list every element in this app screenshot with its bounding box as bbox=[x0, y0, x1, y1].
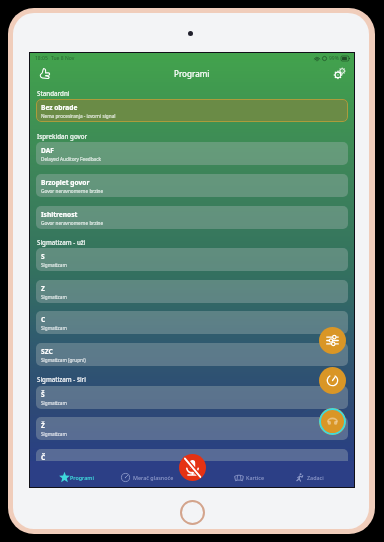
staticText: Brzoplet govor bbox=[41, 178, 90, 187]
staticText: Sigmatizam bbox=[41, 400, 67, 406]
button[interactable]: Č bbox=[36, 449, 348, 472]
staticText: C bbox=[41, 315, 46, 324]
staticText: DAF bbox=[41, 146, 54, 155]
button[interactable]: Programi bbox=[59, 472, 94, 483]
staticText: Tue 8 Nov bbox=[51, 55, 75, 62]
button[interactable]: Ishitrenost bbox=[36, 206, 348, 229]
button[interactable]: Ž bbox=[36, 417, 348, 440]
staticText: Standardni bbox=[37, 89, 70, 97]
staticText: Sigmatizam bbox=[41, 325, 67, 331]
staticText: Ž bbox=[41, 421, 45, 430]
staticText: Govor neravnomerne brzine bbox=[41, 188, 104, 194]
staticText: Š bbox=[41, 390, 45, 399]
staticText: Bez obrade bbox=[41, 103, 78, 112]
staticText: Č bbox=[41, 453, 46, 462]
staticText: Sigmatizam bbox=[41, 431, 67, 437]
button[interactable]: SZC bbox=[36, 343, 348, 366]
staticText: Sigmatizam bbox=[41, 294, 67, 300]
staticText: SZC bbox=[41, 347, 53, 356]
staticText: Z bbox=[41, 284, 45, 293]
button[interactable]: Brzoplet govor bbox=[36, 174, 348, 197]
button[interactable]: S bbox=[36, 248, 348, 271]
staticText: Sigmatizam - širi bbox=[37, 375, 86, 383]
staticText: Kartice bbox=[246, 474, 265, 481]
staticText: Sigmatizam bbox=[41, 262, 67, 268]
staticText: Govor neravnomerne brzine bbox=[41, 220, 104, 226]
staticText: Sigmatizam (grupni) bbox=[41, 357, 86, 363]
button[interactable]: Š bbox=[36, 386, 348, 409]
button[interactable]: Record bbox=[179, 454, 206, 481]
staticText: Programi bbox=[70, 474, 94, 481]
staticText: Nema procesiranja - izvorni signal bbox=[41, 113, 116, 119]
button[interactable]: Settings bbox=[332, 65, 348, 81]
button[interactable]: Merač glasnoće bbox=[121, 472, 174, 483]
staticText: Delayed Auditory Feedback bbox=[41, 156, 101, 162]
staticText: S bbox=[41, 252, 45, 261]
staticText: Isprekidan govor bbox=[37, 132, 88, 140]
button[interactable]: Equalizer bbox=[319, 327, 346, 354]
button[interactable]: DAF bbox=[36, 142, 348, 165]
button[interactable]: Listen bbox=[319, 408, 346, 435]
button[interactable]: Tap mode bbox=[36, 65, 52, 81]
staticText: Ishitrenost bbox=[41, 210, 78, 219]
staticText: Zadaci bbox=[307, 474, 324, 481]
staticText: 18:05 bbox=[35, 55, 48, 62]
staticText: Sigmatizam - uži bbox=[37, 238, 86, 246]
button[interactable]: Z bbox=[36, 280, 348, 303]
staticText: 99% bbox=[329, 55, 339, 62]
button[interactable]: Timer bbox=[319, 367, 346, 394]
button[interactable]: C bbox=[36, 311, 348, 334]
staticText: Programi bbox=[174, 68, 210, 79]
button[interactable]: Zadaci bbox=[295, 472, 324, 483]
button[interactable]: Kartice bbox=[234, 472, 265, 483]
staticText: Merač glasnoće bbox=[133, 474, 174, 481]
button[interactable]: Bez obrade bbox=[36, 99, 348, 122]
